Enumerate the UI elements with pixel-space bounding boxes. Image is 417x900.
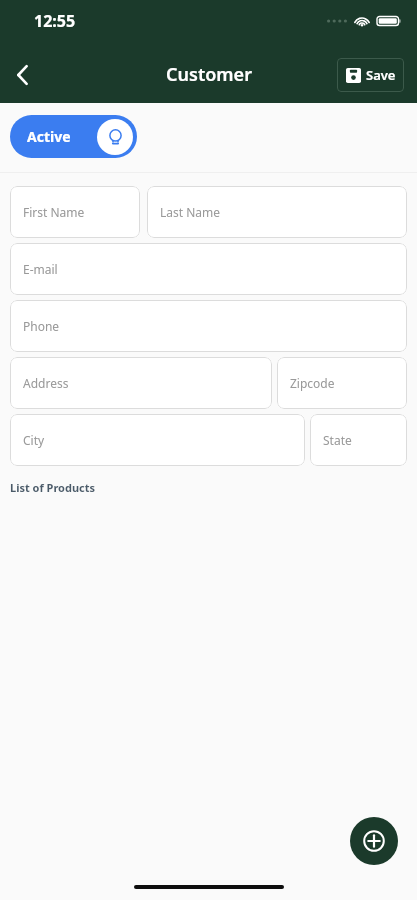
staticText: E-mail [23,261,58,277]
staticText: Address [23,375,69,391]
button[interactable]: Save [337,58,404,92]
staticText: City [23,432,45,448]
staticText: State [323,432,352,448]
button[interactable]: E-mail [10,243,407,295]
button[interactable]: First Name [10,186,140,238]
button[interactable]: Phone [10,300,407,352]
button[interactable]: Active [10,115,137,158]
staticText: 12:55 [34,10,76,32]
button[interactable]: City [10,414,305,466]
button[interactable]: Address [10,357,272,409]
staticText: Zipcode [290,375,335,391]
button[interactable]: Add product [350,817,398,865]
button[interactable]: Zipcode [277,357,407,409]
button[interactable]: State [310,414,407,466]
staticText: List of Products [10,480,96,495]
staticText: Save [366,66,396,84]
staticText: Active [27,127,71,146]
staticText: Last Name [160,204,221,220]
button[interactable]: Back [0,53,44,97]
staticText: First Name [23,204,85,220]
button[interactable]: Last Name [147,186,407,238]
staticText: Phone [23,318,60,334]
staticText: Customer [166,62,252,87]
